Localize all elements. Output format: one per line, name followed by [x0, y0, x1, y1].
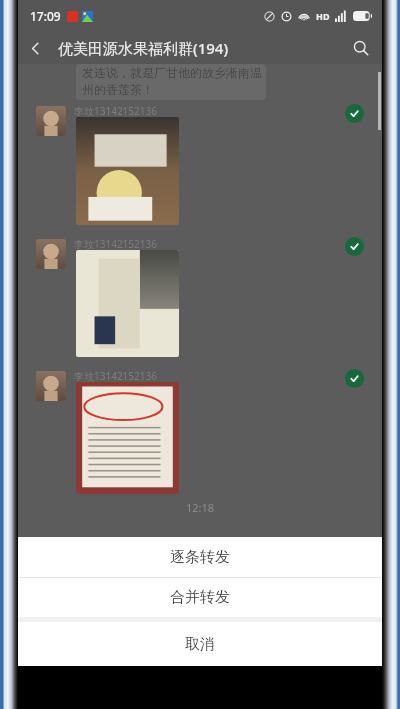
button[interactable]: 取消 [18, 622, 382, 666]
staticText: 李玟13142152136 [74, 237, 157, 251]
button[interactable]: 合并转发 [18, 578, 382, 617]
button[interactable]: Selected [345, 104, 364, 123]
button[interactable]: Selected [345, 237, 364, 256]
button[interactable] [36, 239, 66, 269]
staticText: 合并转发 [170, 588, 230, 607]
button[interactable]: Back [18, 32, 52, 64]
staticText: HD [316, 10, 330, 22]
staticText: 取消 [185, 635, 215, 654]
staticText: 逐条转发 [170, 548, 230, 567]
button[interactable] [36, 106, 66, 136]
button[interactable] [36, 371, 66, 401]
staticText: 12:18 [186, 500, 215, 515]
button[interactable]: Selected [345, 369, 364, 388]
staticText: 李玟13142152136 [74, 104, 157, 118]
button[interactable]: 发连说，就是厂甘他的故乡淅南温 州的香莲茶！ [76, 64, 266, 100]
button[interactable] [76, 382, 179, 494]
staticText: 优美田源水果福利群(194) [58, 38, 229, 58]
staticText: 发连说，就是厂甘他的故乡淅南温 州的香莲茶！ [82, 65, 262, 97]
staticText: 李玟13142152136 [74, 369, 157, 383]
button[interactable] [76, 250, 179, 357]
staticText: 17:09 [30, 8, 61, 24]
button[interactable] [76, 117, 179, 225]
button[interactable]: 逐条转发 [18, 537, 382, 577]
button[interactable]: Search [344, 32, 378, 64]
